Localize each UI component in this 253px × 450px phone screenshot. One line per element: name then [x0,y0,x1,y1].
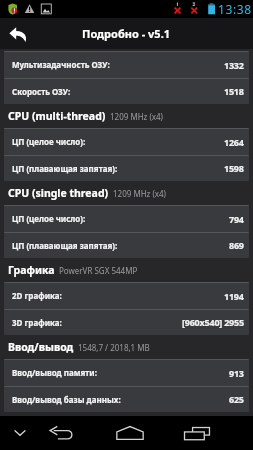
staticText: 1548,7 / 2018,1 MB [78,342,150,353]
staticText: 3D графика: [12,317,62,328]
button[interactable]: Hide keyboard [4,416,36,450]
button[interactable]: 2D графика: [4,282,249,309]
button[interactable]: Ввод/вывод памяти: [4,359,249,386]
button[interactable]: ЦП (целое число): [4,205,249,232]
button[interactable]: Back [2,18,34,49]
staticText: 13:38 [218,1,252,17]
staticText: 1194 [224,290,244,302]
staticText: [960x540] 2955 [182,316,244,328]
staticText: Ввод/вывод базы данных: [12,394,121,405]
button[interactable]: ЦП (целое число): [4,128,249,155]
staticText: 625 [229,393,244,405]
staticText: Подробно - v5.1 [82,26,171,41]
staticText: CPU (multi-thread) [8,109,106,123]
button[interactable]: Back [44,416,80,450]
staticText: Мультизадачность ОЗУ: [12,59,110,70]
staticText: 913 [229,367,244,379]
button[interactable]: 3D графика: [4,309,249,335]
staticText: Ввод/вывод [8,340,74,354]
staticText: 2D графика: [12,290,62,301]
button[interactable]: Recent apps [179,416,215,450]
staticText: CPU (single thread) [8,186,109,200]
button[interactable]: Мультизадачность ОЗУ: [4,51,249,78]
staticText: ЦП (целое число): [12,136,86,147]
button[interactable]: Скорость ОЗУ: [4,78,249,104]
button[interactable]: ЦП (плавающая запятая): [4,232,249,258]
staticText: ЦП (плавающая запятая): [12,240,118,251]
button[interactable]: Ввод/вывод базы данных: [4,386,249,412]
button[interactable]: ЦП (плавающая запятая): [4,155,249,181]
staticText: ЦП (целое число): [12,213,86,224]
staticText: 1598 [224,162,244,174]
staticText: PowerVR SGX 544MP [59,265,138,276]
staticText: 1332 [224,59,244,71]
button[interactable]: Home [112,416,148,450]
staticText: Графика [8,263,55,277]
staticText: 1209 MHz (x4) [113,188,167,199]
staticText: 1209 MHz (x4) [110,111,164,122]
staticText: 1264 [224,136,244,148]
staticText: 1518 [224,85,244,97]
staticText: Скорость ОЗУ: [12,86,71,97]
staticText: 794 [229,213,244,225]
staticText: 869 [229,239,244,251]
staticText: ЦП (плавающая запятая): [12,163,118,174]
staticText: Ввод/вывод памяти: [12,367,97,378]
